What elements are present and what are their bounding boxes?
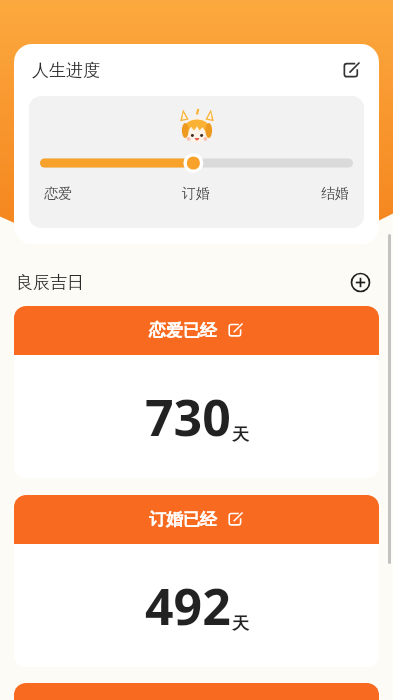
button[interactable]: Add (347, 269, 373, 295)
button[interactable]: 订婚 (145, 185, 247, 203)
staticText: 天 (232, 613, 249, 634)
staticText: 恋爱 (44, 185, 145, 203)
button[interactable]: 结婚 (247, 185, 349, 203)
button[interactable]: 恋爱 (44, 185, 145, 203)
staticText: 订婚 (145, 185, 247, 203)
staticText: 492 (145, 572, 231, 640)
staticText: 天 (232, 424, 249, 445)
staticText: 730 (145, 383, 231, 451)
staticText: 订婚已经 (149, 509, 217, 530)
button[interactable]: Edit 订婚已经 (226, 510, 245, 529)
button[interactable]: 订婚已经 (14, 495, 379, 667)
staticText: 人生进度 (32, 60, 100, 81)
staticText: 良辰吉日 (16, 272, 84, 293)
button[interactable]: Life stage slider (40, 152, 353, 174)
staticText: 恋爱已经 (149, 320, 217, 341)
staticText: 结婚 (247, 185, 349, 203)
button[interactable]: Edit life progress (338, 57, 364, 83)
button[interactable]: 恋爱已经 (14, 306, 379, 478)
button[interactable] (14, 683, 379, 700)
button[interactable]: Edit 恋爱已经 (226, 321, 245, 340)
